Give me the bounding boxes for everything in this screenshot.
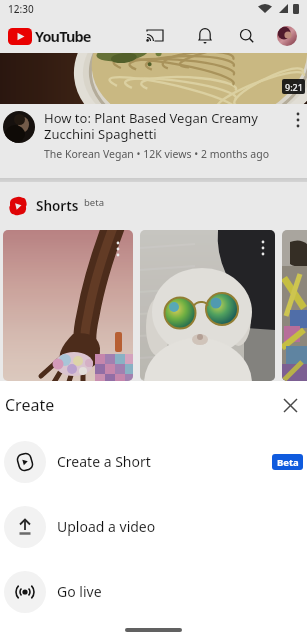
button[interactable]: Upload a video xyxy=(0,494,307,559)
button[interactable] xyxy=(282,230,307,381)
staticText: Create xyxy=(5,394,55,416)
button[interactable] xyxy=(237,26,257,46)
button[interactable] xyxy=(140,230,275,381)
staticText: beta xyxy=(84,196,104,209)
button[interactable] xyxy=(195,26,215,46)
staticText: How to: Plant Based Vegan Creamy Zucchin… xyxy=(44,109,258,142)
staticText: Beta xyxy=(277,456,299,469)
button[interactable]: How to: Plant Based Vegan Creamy Zucchin… xyxy=(0,104,307,178)
staticText: YouTube xyxy=(35,26,91,46)
staticText: Shorts xyxy=(36,197,79,215)
button[interactable] xyxy=(277,26,297,46)
staticText: 12:30 xyxy=(8,2,34,16)
staticText: Go live xyxy=(57,582,102,601)
staticText: Upload a video xyxy=(57,517,156,536)
button[interactable] xyxy=(277,392,303,418)
button[interactable] xyxy=(145,26,165,46)
button[interactable]: Create a Short xyxy=(0,429,307,494)
button[interactable] xyxy=(3,230,133,381)
button[interactable]: Go live xyxy=(0,559,307,624)
button[interactable]: YouTube xyxy=(8,26,91,46)
staticText: Create a Short xyxy=(57,452,151,471)
button[interactable]: 9:21 xyxy=(0,53,307,104)
staticText: The Korean Vegan • 12K views • 2 months … xyxy=(44,147,270,161)
staticText: 9:21 xyxy=(285,81,303,93)
button[interactable] xyxy=(292,108,304,132)
